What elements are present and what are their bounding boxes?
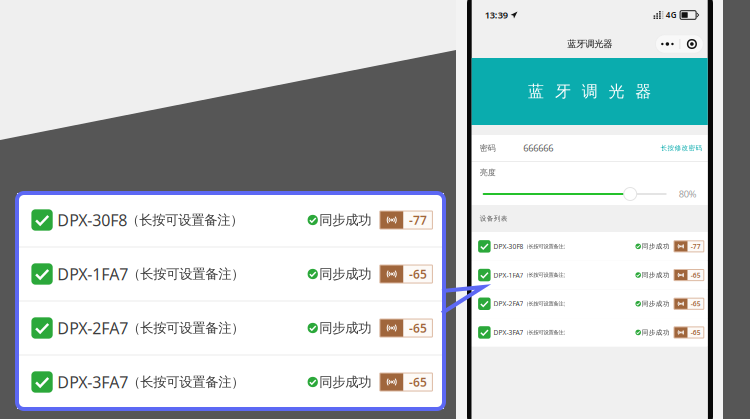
staticText: 同步成功 bbox=[642, 271, 670, 279]
staticText: 同步成功 bbox=[642, 242, 670, 250]
staticText: （长按可设置备注） bbox=[523, 243, 568, 250]
button[interactable]: 长按修改密码 bbox=[660, 140, 708, 156]
staticText: -65 bbox=[691, 271, 701, 279]
staticText: 蓝牙调光器 bbox=[528, 82, 651, 101]
staticText: DPX-1FA7 bbox=[57, 263, 128, 285]
staticText: （长按可设置备注） bbox=[127, 374, 244, 390]
button[interactable]: DPX-3FA7 bbox=[17, 355, 444, 408]
staticText: 蓝牙调光器 bbox=[567, 38, 612, 50]
staticText: 设备列表 bbox=[480, 214, 508, 223]
button[interactable]: DPX-1FA7 bbox=[17, 247, 444, 300]
staticText: 同步成功 bbox=[319, 320, 371, 336]
staticText: 同步成功 bbox=[319, 374, 371, 390]
button[interactable]: DPX-30F8 bbox=[17, 193, 444, 246]
staticText: -65 bbox=[409, 266, 427, 282]
staticText: DPX-3FA7 bbox=[493, 328, 523, 337]
staticText: 666666 bbox=[523, 142, 553, 154]
staticText: DPX-30F8 bbox=[57, 209, 127, 231]
staticText: （长按可设置备注） bbox=[523, 272, 568, 278]
staticText: 4G bbox=[666, 10, 677, 20]
button[interactable]: DPX-2FA7 bbox=[472, 289, 708, 318]
staticText: DPX-3FA7 bbox=[57, 371, 128, 393]
staticText: （长按可设置备注） bbox=[127, 320, 244, 336]
staticText: DPX-1FA7 bbox=[493, 271, 523, 279]
staticText: （长按可设置备注） bbox=[523, 329, 568, 336]
staticText: （长按可设置备注） bbox=[127, 266, 244, 282]
button[interactable]: DPX-3FA7 bbox=[472, 318, 708, 347]
staticText: -65 bbox=[409, 374, 427, 390]
staticText: 13:39 bbox=[485, 9, 508, 21]
staticText: 密码 bbox=[480, 143, 496, 153]
staticText: -77 bbox=[691, 242, 701, 251]
staticText: -65 bbox=[691, 299, 701, 308]
staticText: 同步成功 bbox=[642, 300, 670, 308]
button[interactable]: DPX-2FA7 bbox=[17, 301, 444, 354]
staticText: 同步成功 bbox=[319, 266, 371, 282]
staticText: DPX-2FA7 bbox=[57, 317, 128, 339]
staticText: -65 bbox=[409, 320, 427, 336]
staticText: （长按可设置备注） bbox=[126, 212, 243, 228]
button[interactable]: More options bbox=[655, 35, 703, 53]
staticText: -77 bbox=[409, 212, 427, 228]
staticText: 同步成功 bbox=[319, 212, 371, 228]
button[interactable]: DPX-1FA7 bbox=[472, 261, 708, 289]
staticText: 同步成功 bbox=[642, 328, 670, 337]
staticText: （长按可设置备注） bbox=[523, 300, 568, 307]
button[interactable]: DPX-30F8 bbox=[472, 232, 708, 261]
staticText: 亮度 bbox=[480, 168, 496, 177]
staticText: 长按修改密码 bbox=[660, 144, 702, 152]
staticText: 80% bbox=[679, 188, 697, 200]
staticText: DPX-2FA7 bbox=[493, 299, 523, 308]
staticText: DPX-30F8 bbox=[493, 242, 523, 251]
staticText: -65 bbox=[691, 328, 701, 337]
